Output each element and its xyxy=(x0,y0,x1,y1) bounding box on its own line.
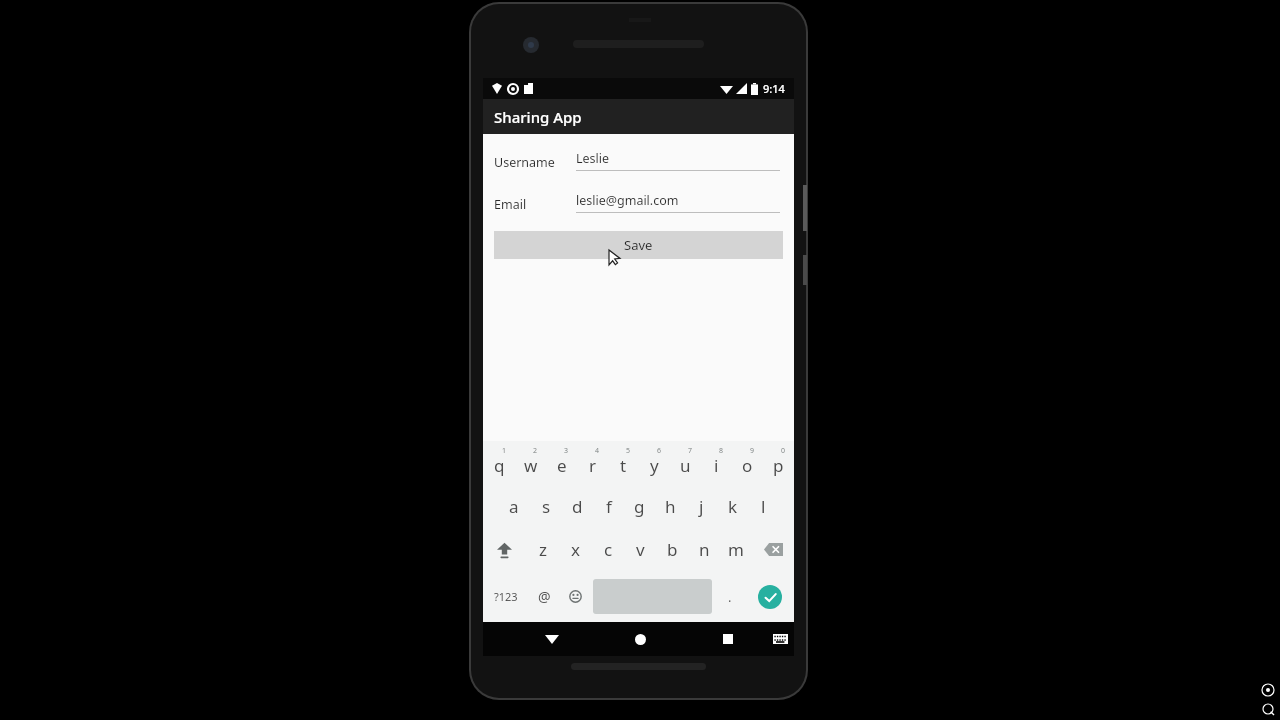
button[interactable]: b xyxy=(656,528,688,571)
button[interactable]: Backspace xyxy=(752,528,794,571)
staticText: 7 xyxy=(688,446,693,456)
button[interactable]: d xyxy=(562,485,593,528)
button[interactable]: v xyxy=(624,528,656,571)
staticText: b xyxy=(667,538,678,561)
staticText: . xyxy=(728,588,732,606)
button[interactable]: k xyxy=(717,485,748,528)
staticText: 6 xyxy=(657,446,662,456)
button[interactable]: At sign xyxy=(529,571,560,622)
staticText: 3 xyxy=(564,446,569,456)
staticText: leslie@gmail.com xyxy=(576,192,679,209)
staticText: ?123 xyxy=(494,589,518,604)
staticText: 8 xyxy=(719,446,724,456)
staticText: o xyxy=(742,454,753,477)
staticText: Save xyxy=(624,236,653,254)
button[interactable]: 1 xyxy=(483,441,515,485)
button[interactable]: m xyxy=(720,528,752,571)
staticText: 4 xyxy=(595,446,600,456)
staticText: t xyxy=(620,454,627,477)
button[interactable]: z xyxy=(526,528,559,571)
staticText: m xyxy=(728,538,744,561)
button[interactable]: Save xyxy=(494,231,783,259)
staticText: 1 xyxy=(502,446,507,456)
staticText: f xyxy=(606,495,612,518)
button[interactable]: 3 xyxy=(546,441,577,485)
staticText: 5 xyxy=(626,446,631,456)
button[interactable]: 7 xyxy=(670,441,701,485)
button[interactable]: Switch keyboard xyxy=(766,625,794,653)
button[interactable]: g xyxy=(624,485,655,528)
staticText: i xyxy=(714,454,719,477)
button[interactable]: 5 xyxy=(608,441,639,485)
staticText: Email xyxy=(494,196,576,213)
staticText: x xyxy=(571,538,580,561)
staticText: p xyxy=(773,454,784,477)
staticText: q xyxy=(494,454,505,477)
staticText: a xyxy=(509,495,519,518)
button[interactable]: Leslie xyxy=(576,150,780,171)
button[interactable]: 6 xyxy=(639,441,670,485)
staticText: e xyxy=(557,454,567,477)
staticText: w xyxy=(524,454,538,477)
staticText: v xyxy=(636,538,645,561)
staticText: Username xyxy=(494,154,576,171)
staticText: k xyxy=(728,495,738,518)
staticText: z xyxy=(539,538,547,561)
button[interactable]: Home xyxy=(623,625,657,653)
button[interactable]: 8 xyxy=(701,441,732,485)
staticText: l xyxy=(761,495,766,518)
staticText: y xyxy=(650,454,659,477)
staticText: j xyxy=(699,495,704,518)
staticText: 0 xyxy=(781,446,786,456)
button[interactable]: h xyxy=(655,485,686,528)
button[interactable]: a xyxy=(498,485,530,528)
staticText: 9:14 xyxy=(763,81,785,96)
button[interactable]: c xyxy=(592,528,624,571)
button[interactable]: Enter xyxy=(745,571,794,622)
staticText: 9 xyxy=(750,446,755,456)
staticText: 2 xyxy=(533,446,538,456)
button[interactable]: ?123 xyxy=(483,571,529,622)
button[interactable]: n xyxy=(688,528,720,571)
staticText: d xyxy=(572,495,583,518)
button[interactable]: Emoji xyxy=(560,571,591,622)
staticText: @ xyxy=(538,587,551,606)
button[interactable]: 2 xyxy=(515,441,546,485)
button[interactable]: . xyxy=(714,571,745,622)
staticText: s xyxy=(542,495,551,518)
button[interactable]: j xyxy=(686,485,717,528)
button[interactable]: Recents xyxy=(711,625,745,653)
button[interactable]: leslie@gmail.com xyxy=(576,192,780,213)
button[interactable]: Back xyxy=(535,625,569,653)
staticText: g xyxy=(634,495,645,518)
staticText: u xyxy=(680,454,691,477)
button[interactable]: 0 xyxy=(763,441,794,485)
staticText: Sharing App xyxy=(494,107,582,127)
button[interactable]: 9 xyxy=(732,441,763,485)
staticText: Leslie xyxy=(576,150,610,167)
button[interactable]: f xyxy=(593,485,624,528)
button[interactable]: x xyxy=(559,528,592,571)
staticText: n xyxy=(699,538,710,561)
staticText: h xyxy=(665,495,676,518)
staticText: c xyxy=(604,538,613,561)
button[interactable]: l xyxy=(748,485,779,528)
button[interactable]: Shift xyxy=(483,528,526,571)
button[interactable]: 4 xyxy=(577,441,608,485)
staticText: r xyxy=(589,454,597,477)
button[interactable]: s xyxy=(530,485,562,528)
